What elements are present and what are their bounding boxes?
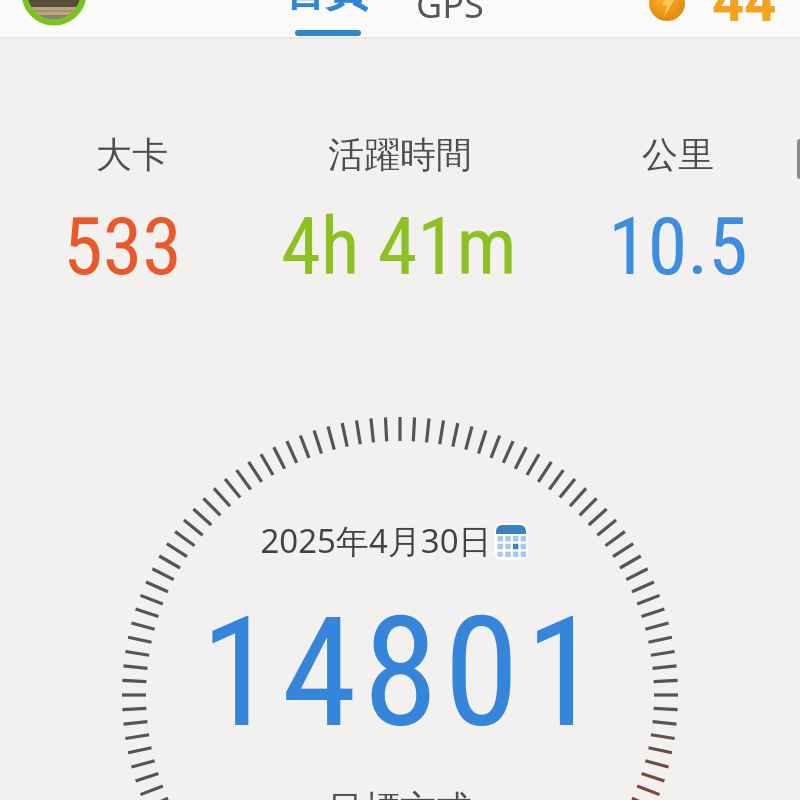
staticText: 14801 bbox=[200, 584, 607, 762]
staticText: 10.5 bbox=[608, 200, 748, 294]
staticText: GPS bbox=[416, 0, 484, 29]
staticText: 44 bbox=[712, 0, 777, 35]
staticText: 首頁 bbox=[284, 0, 368, 18]
staticText: 2025年4月30日 bbox=[260, 518, 492, 563]
staticText: 533 bbox=[63, 200, 182, 294]
staticText: 大卡 bbox=[96, 132, 168, 177]
staticText: 4h 41m bbox=[281, 200, 517, 294]
staticText: 目標方式 bbox=[328, 786, 472, 800]
staticText: 公里 bbox=[642, 132, 714, 177]
staticText: 活躍時間 bbox=[328, 132, 472, 177]
